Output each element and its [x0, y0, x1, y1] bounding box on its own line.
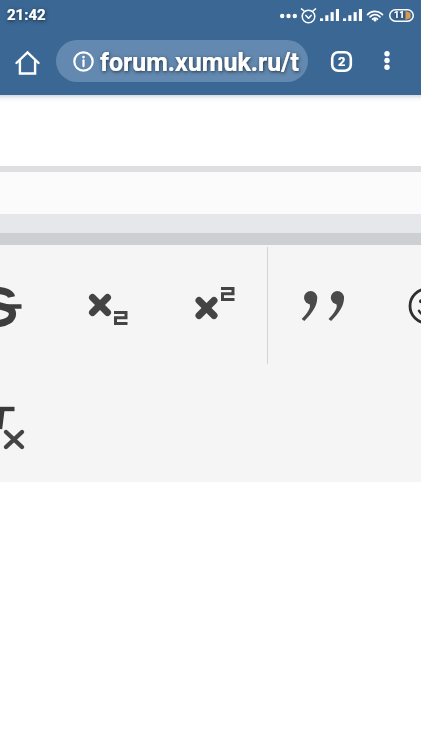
button[interactable]: Quote: [294, 282, 350, 330]
button[interactable]: Subscript: [76, 280, 142, 338]
button[interactable]: Home: [10, 45, 45, 80]
staticText: 11: [394, 10, 405, 21]
button[interactable]: Remove formatting: [0, 397, 34, 453]
staticText: 2: [338, 54, 346, 69]
button[interactable]: Strikethrough: [0, 284, 28, 332]
button[interactable]: More options: [371, 44, 403, 76]
button[interactable]: Emoji: [398, 278, 421, 336]
button[interactable]: Tabs: [327, 47, 356, 76]
staticText: forum.xumuk.ru/t: [100, 48, 299, 77]
button[interactable]: Superscript: [182, 273, 248, 331]
button[interactable]: forum.xumuk.ru/t: [56, 40, 308, 82]
staticText: 21:42: [7, 6, 46, 24]
